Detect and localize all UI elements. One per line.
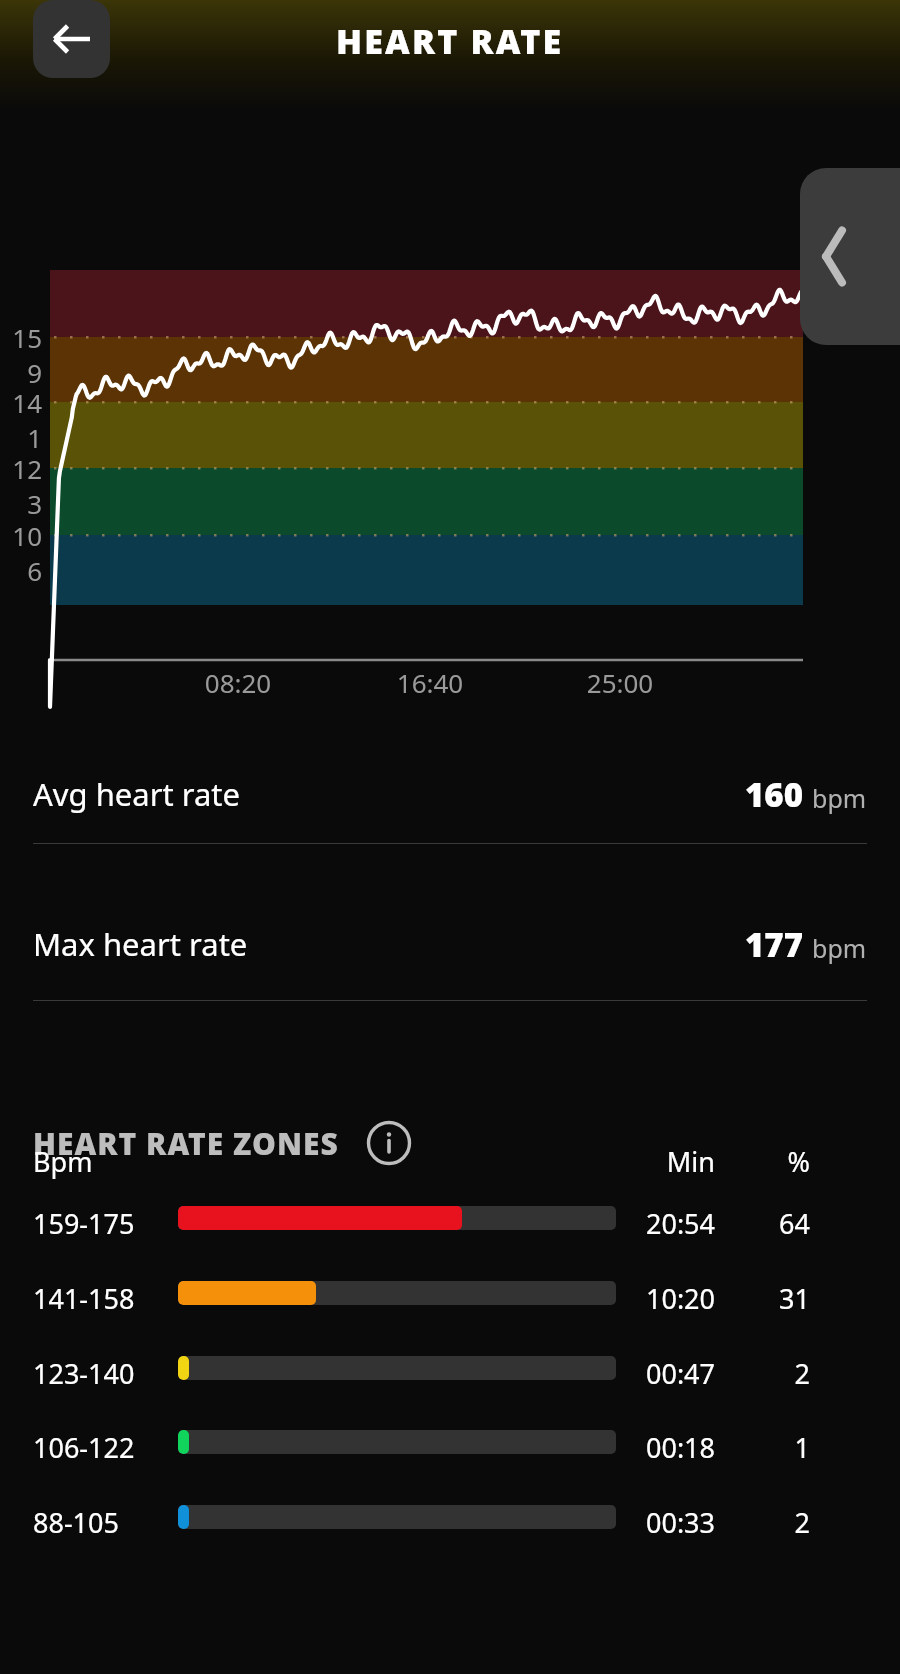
staticText: 159 [0,320,42,390]
staticText: HEART RATE ZONES [33,1123,339,1164]
staticText: 2 [720,1355,810,1392]
staticText: bpm [812,781,867,815]
staticText: 123-140 [33,1355,135,1392]
button[interactable]: 159-175 [0,1192,900,1252]
button[interactable]: 88-105 [0,1491,900,1551]
button[interactable]: 123-140 [0,1342,900,1402]
staticText: 25:00 [560,665,680,700]
staticText: 159-175 [33,1205,135,1242]
staticText: 1 [720,1429,810,1466]
staticText: 160 [745,772,804,817]
staticText: 64 [720,1205,810,1242]
button[interactable]: HEART RATE ZONES [33,1120,412,1166]
staticText: 10:20 [570,1280,715,1317]
staticText: 00:33 [570,1504,715,1541]
staticText: 00:47 [570,1355,715,1392]
staticText: 123 [0,451,42,521]
button[interactable]: Avg heart rate [0,744,900,844]
staticText: 08:20 [178,665,298,700]
staticText: Avg heart rate [33,773,241,815]
staticText: 106 [0,518,42,588]
button[interactable]: Back [33,0,110,78]
staticText: bpm [812,931,867,965]
staticText: 00:18 [570,1429,715,1466]
staticText: % [720,1143,810,1180]
staticText: 177 [745,922,804,967]
staticText: Bpm [33,1143,93,1180]
staticText: 141-158 [33,1280,135,1317]
button[interactable]: 106-122 [0,1416,900,1476]
staticText: 2 [720,1504,810,1541]
button[interactable]: 141-158 [0,1267,900,1327]
staticText: 31 [720,1280,810,1317]
staticText: Min [570,1143,715,1180]
staticText: 141 [0,385,42,455]
staticText: HEART RATE [336,18,564,64]
staticText: 88-105 [33,1504,119,1541]
staticText: 20:54 [570,1205,715,1242]
button[interactable]: Previous [800,168,900,345]
button[interactable]: Max heart rate [0,894,900,994]
staticText: 16:40 [370,665,490,700]
staticText: Max heart rate [33,923,248,965]
staticText: 106-122 [33,1429,135,1466]
